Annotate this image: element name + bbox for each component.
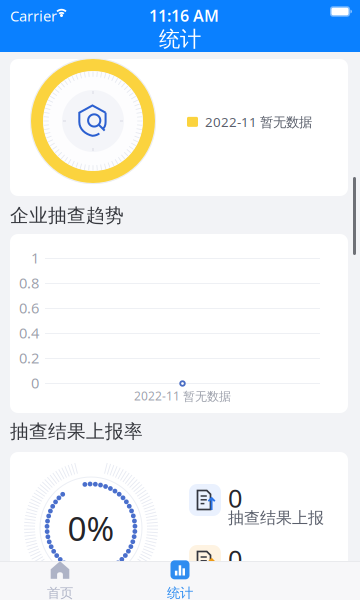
staticText: 0% [67, 506, 114, 550]
staticText: 抽查结果上报 [228, 508, 324, 528]
staticText: 企业抽查趋势 [10, 204, 124, 227]
button[interactable]: 首页 [0, 561, 120, 600]
staticText: 0.4 [19, 323, 39, 342]
staticText: 抽查结果上报率 [10, 420, 143, 443]
button[interactable]: 统计 [120, 561, 240, 600]
staticText: 0 [31, 373, 39, 392]
staticText: 0 [228, 542, 242, 576]
staticText: 2022-11 暂无数据 [134, 388, 231, 404]
staticText: 0 [228, 481, 242, 515]
staticText: Carrier [10, 6, 57, 23]
staticText: 11:16 AM [149, 5, 219, 22]
staticText: 0.2 [19, 348, 39, 367]
staticText: 统计 [159, 26, 201, 52]
staticText: 首页 [47, 585, 73, 600]
staticText: 0.6 [19, 298, 39, 317]
staticText: 2022-11 暂无数据 [205, 113, 312, 131]
staticText: 0.8 [19, 273, 39, 292]
staticText: 统计 [167, 585, 193, 600]
staticText: 1 [31, 248, 39, 267]
